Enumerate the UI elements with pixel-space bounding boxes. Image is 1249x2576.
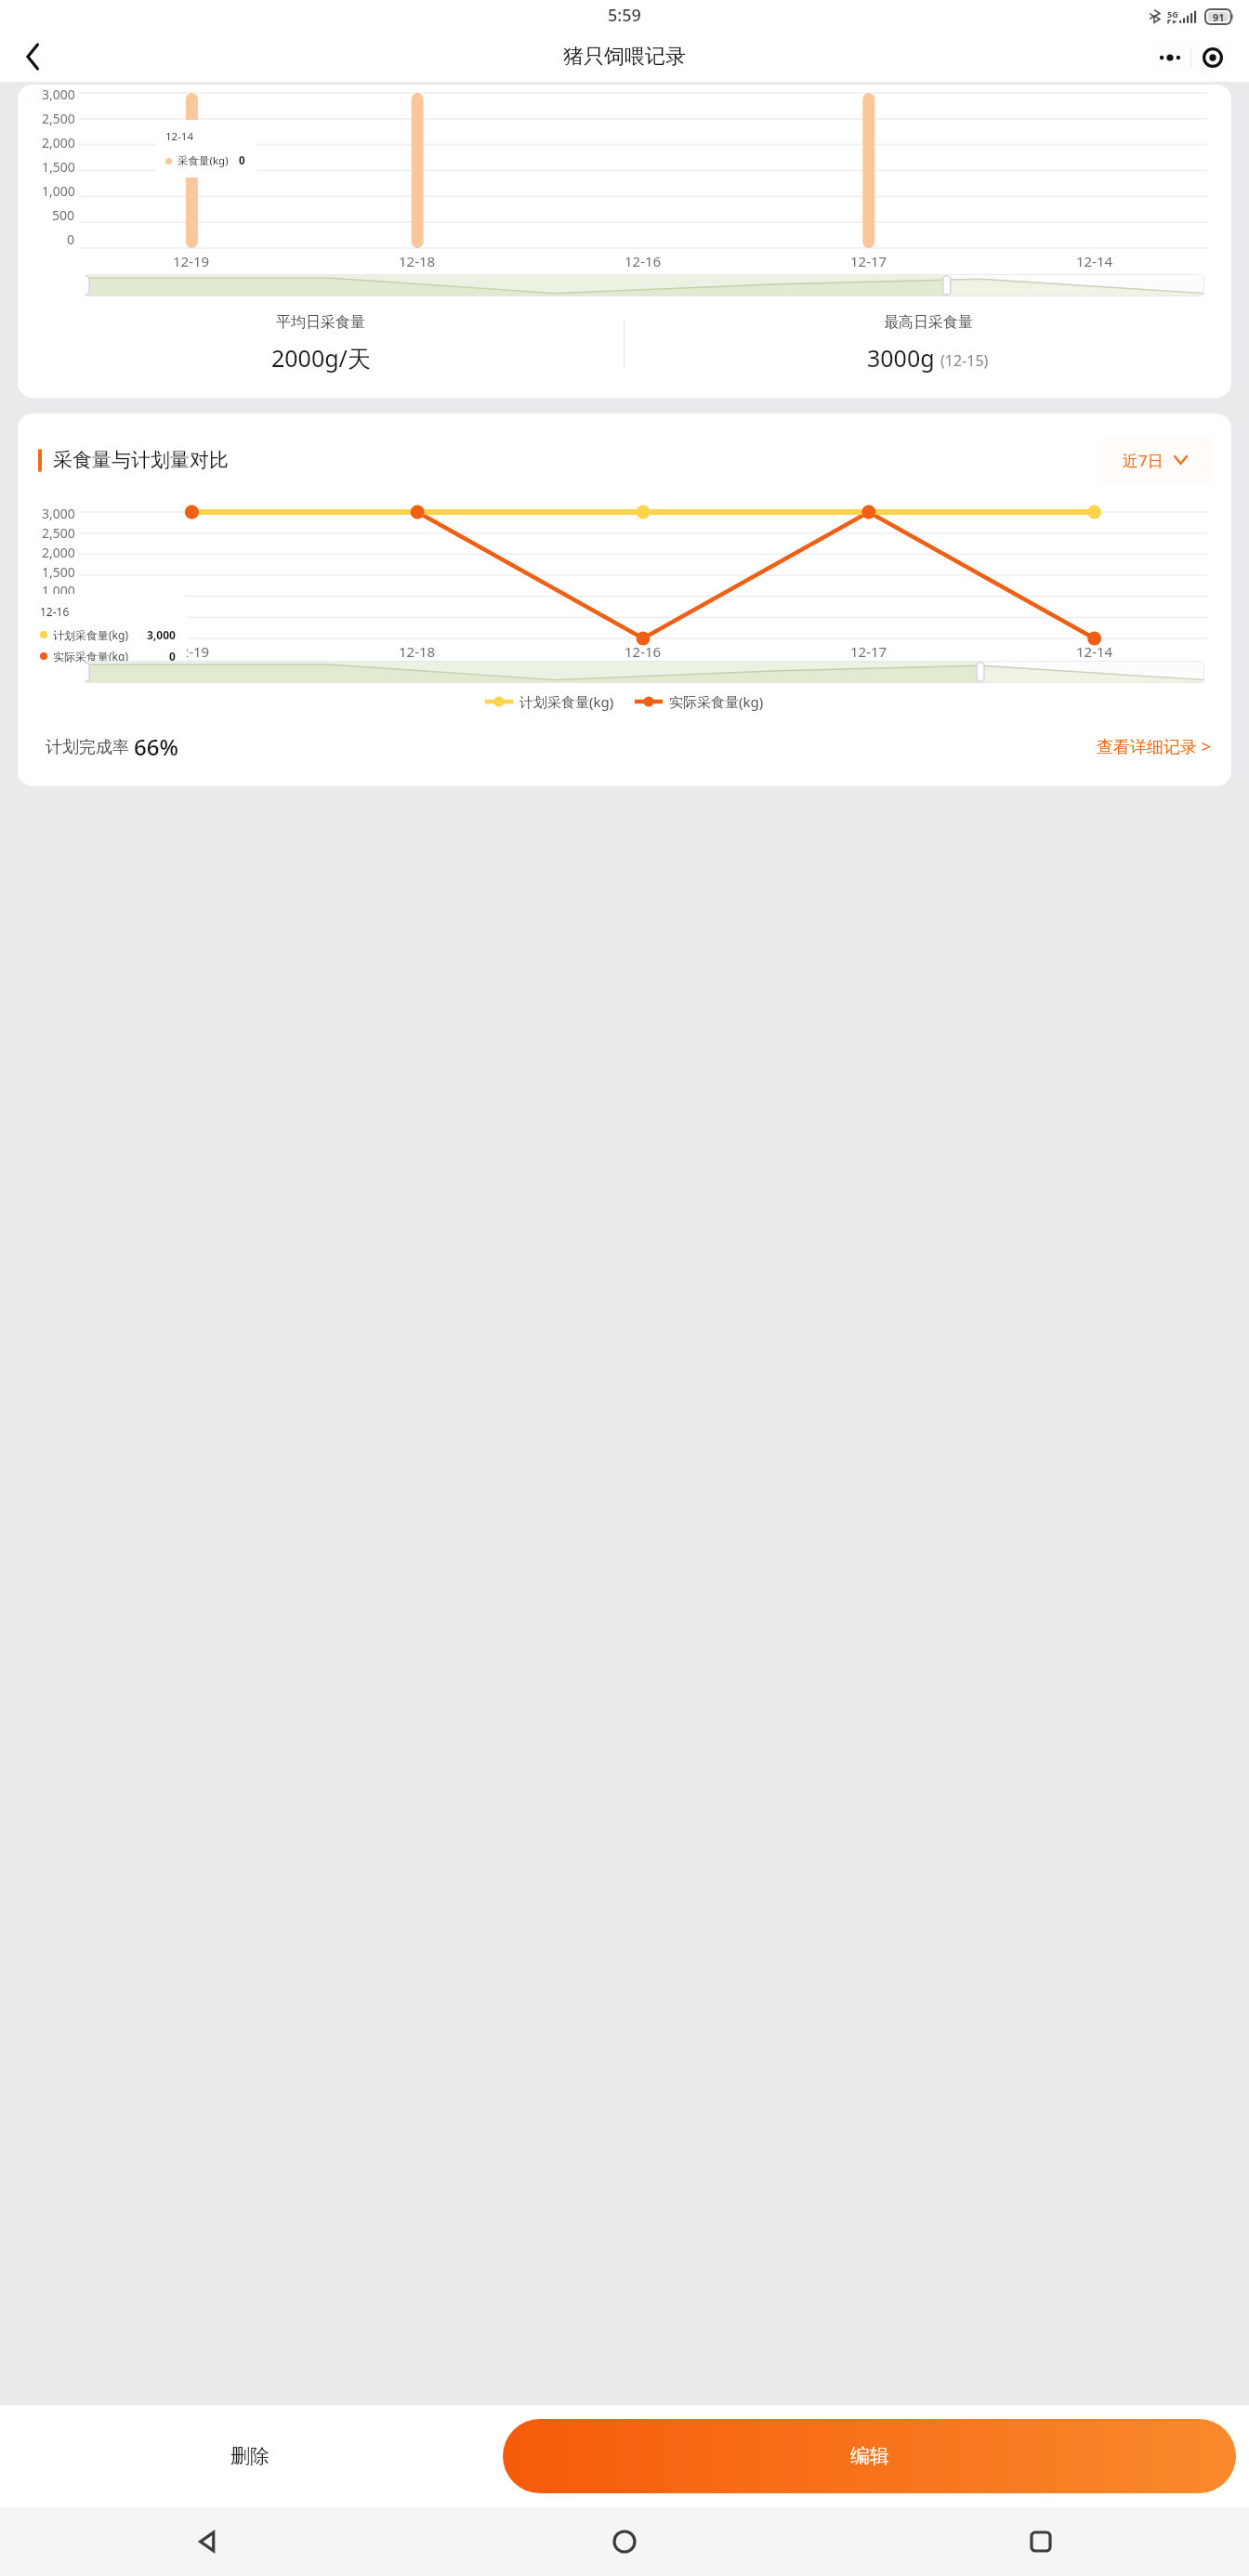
staticText: 12-19 bbox=[173, 252, 210, 270]
staticText: 2,000 bbox=[42, 134, 75, 151]
staticText: 3,000 bbox=[42, 85, 75, 103]
staticText: 3000g bbox=[867, 342, 935, 374]
staticText: 0 bbox=[169, 649, 176, 664]
staticText: (12-15) bbox=[940, 350, 989, 371]
staticText: 500 bbox=[52, 601, 75, 619]
staticText: 1,000 bbox=[42, 582, 75, 599]
staticText: 2,500 bbox=[42, 524, 75, 542]
staticText: 0 bbox=[239, 153, 245, 168]
staticText: 12-17 bbox=[850, 642, 887, 661]
button[interactable]: 查看详细记录 > bbox=[1097, 735, 1211, 758]
staticText: 91 bbox=[1213, 10, 1225, 24]
staticText: 计划采食量(kg) bbox=[53, 627, 128, 642]
staticText: 最高日采食量 bbox=[884, 313, 973, 332]
staticText: 12-14 bbox=[1076, 252, 1113, 270]
button[interactable]: Recents bbox=[833, 2507, 1249, 2576]
staticText: 66% bbox=[134, 731, 178, 762]
staticText: 12-18 bbox=[399, 252, 436, 270]
button[interactable]: Back bbox=[0, 2507, 416, 2576]
staticText: 猪只饲喂记录 bbox=[563, 44, 686, 70]
staticText: 12-16 bbox=[624, 642, 662, 661]
staticText: 实际采食量(kg) bbox=[669, 692, 764, 711]
staticText: 500 bbox=[52, 206, 75, 224]
staticText: 删除 bbox=[230, 2444, 270, 2468]
staticText: 计划采食量(kg) bbox=[519, 692, 614, 711]
staticText: 12-16 bbox=[40, 604, 70, 619]
staticText: 编辑 bbox=[850, 2444, 889, 2468]
staticText: 平均日采食量 bbox=[276, 313, 365, 332]
staticText: 2000g/天 bbox=[271, 342, 371, 374]
staticText: 采食量(kg) bbox=[177, 153, 229, 168]
staticText: 12-14 bbox=[165, 129, 194, 144]
staticText: 1,500 bbox=[42, 563, 75, 581]
staticText: 12-16 bbox=[624, 252, 662, 270]
button[interactable]: Back bbox=[13, 36, 54, 77]
button[interactable]: Mini program menu bbox=[1150, 40, 1233, 74]
staticText: 12-18 bbox=[399, 642, 436, 661]
staticText: 0 bbox=[67, 621, 75, 638]
button[interactable]: 近7日 bbox=[1098, 436, 1211, 484]
staticText: 查看详细记录 > bbox=[1097, 735, 1211, 758]
staticText: 5G bbox=[1167, 8, 1178, 20]
staticText: 12-19 bbox=[173, 642, 210, 661]
staticText: 3,000 bbox=[42, 505, 75, 522]
button[interactable]: 删除 bbox=[13, 2419, 486, 2493]
staticText: 采食量与计划量对比 bbox=[53, 448, 229, 472]
staticText: 2,000 bbox=[42, 544, 75, 561]
staticText: 实际采食量(kg) bbox=[53, 649, 128, 664]
button[interactable]: 编辑 bbox=[503, 2419, 1236, 2493]
staticText: 3,000 bbox=[147, 627, 176, 642]
staticText: 近7日 bbox=[1123, 450, 1164, 471]
staticText: 计划完成率 bbox=[46, 735, 134, 758]
staticText: 12-17 bbox=[850, 252, 887, 270]
staticText: 1,500 bbox=[42, 158, 75, 176]
staticText: 1,000 bbox=[42, 182, 75, 200]
staticText: 5:59 bbox=[608, 4, 641, 27]
staticText: 2,500 bbox=[42, 110, 75, 127]
staticText: 12-14 bbox=[1076, 642, 1113, 661]
staticText: 0 bbox=[67, 230, 75, 248]
button[interactable]: Home bbox=[416, 2507, 833, 2576]
